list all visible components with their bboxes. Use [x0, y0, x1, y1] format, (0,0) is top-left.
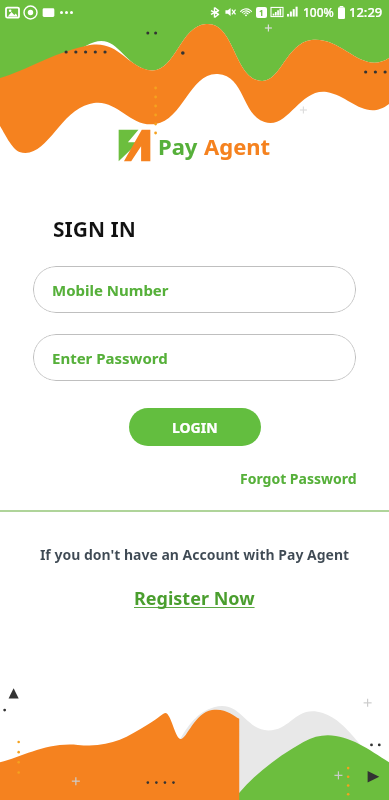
button[interactable]: LOGIN — [129, 408, 261, 446]
staticText: Pay — [158, 131, 198, 161]
staticText: Forgot Password — [240, 469, 357, 488]
button[interactable]: Forgot Password — [240, 467, 389, 490]
staticText: Enter Password — [52, 348, 168, 368]
staticText: SIGN IN — [53, 215, 136, 244]
staticText: Mobile Number — [52, 280, 169, 300]
staticText: If you don't have an Account with Pay Ag… — [0, 545, 389, 564]
staticText: LOGIN — [172, 418, 218, 437]
staticText: 1 — [259, 7, 264, 18]
button[interactable]: Enter Password — [33, 334, 356, 381]
button[interactable]: Register Now — [128, 584, 261, 613]
staticText: Register Now — [134, 586, 255, 611]
staticText: 100% — [303, 4, 334, 20]
button[interactable]: Mobile Number — [33, 266, 356, 313]
staticText: Agent — [204, 131, 271, 161]
staticText: 12:29 — [349, 3, 383, 21]
